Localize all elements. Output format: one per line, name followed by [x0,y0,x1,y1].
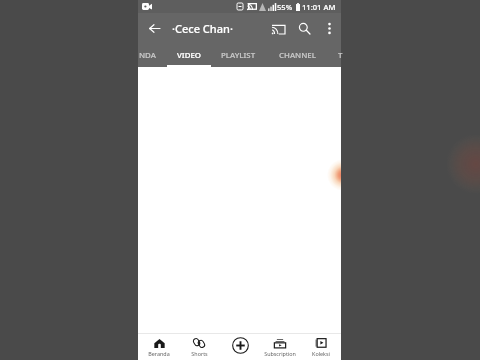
button[interactable]: T [330,43,351,67]
staticText: Shorts [191,350,208,357]
button[interactable]: CHANNEL [271,43,324,67]
staticText: Subscription [264,350,296,357]
staticText: VIDEO [177,50,201,61]
staticText: NDA [139,50,156,61]
button[interactable]: VIDEO [169,43,209,67]
staticText: CHANNEL [279,50,316,61]
button[interactable]: Create [220,334,260,360]
staticText: 11:01 AM [302,2,336,12]
button[interactable]: Beranda [139,334,179,360]
staticText: ·Cece Chan· [172,21,233,36]
staticText: Beranda [148,350,170,357]
staticText: PLAYLIST [221,50,256,61]
button[interactable]: NDA [131,43,164,67]
button[interactable]: PLAYLIST [213,43,264,67]
staticText: T [338,50,343,61]
staticText: Koleksi [312,350,330,357]
button[interactable]: Shorts [179,334,219,360]
button[interactable]: Koleksi [301,334,341,360]
button[interactable]: Subscription [260,334,300,360]
button[interactable]: Search [293,17,315,39]
button[interactable]: Cast [267,17,289,39]
button[interactable]: More options [318,17,340,39]
staticText: 55% [277,2,293,12]
button[interactable]: Back [142,16,166,40]
